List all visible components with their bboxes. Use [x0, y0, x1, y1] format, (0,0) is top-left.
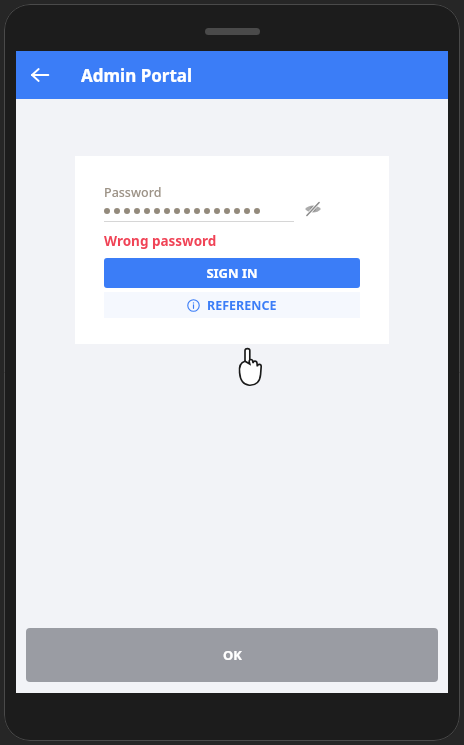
staticText: Admin Portal — [81, 64, 193, 87]
button[interactable]: SIGN IN — [104, 258, 360, 288]
button[interactable]: Back — [16, 51, 64, 99]
staticText: REFERENCE — [207, 297, 277, 314]
button[interactable]: OK — [26, 628, 438, 682]
staticText: Wrong password — [104, 232, 217, 250]
staticText: OK — [223, 646, 242, 664]
staticText: Password — [104, 184, 162, 201]
button[interactable]: Show password — [298, 194, 328, 224]
button[interactable]: REFERENCE — [104, 292, 360, 318]
staticText: SIGN IN — [206, 264, 258, 282]
